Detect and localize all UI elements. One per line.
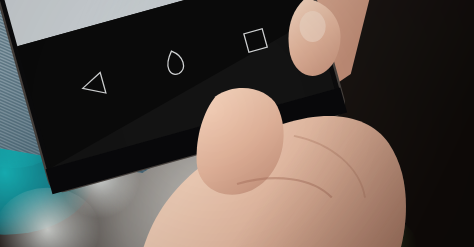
button[interactable]: Factory reset confirmation on a phone he… xyxy=(0,0,474,247)
